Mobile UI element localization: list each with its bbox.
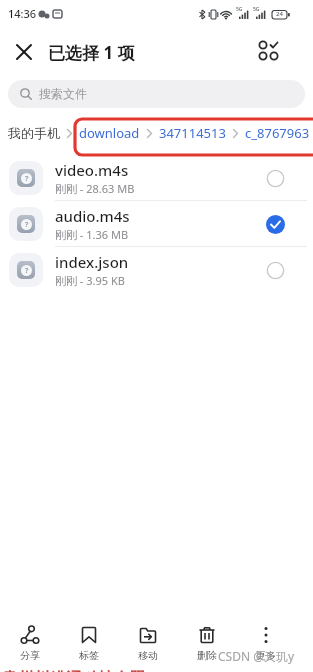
staticText: 搜索文件 (39, 86, 87, 101)
staticText: 移动 (138, 649, 158, 662)
button[interactable]: 更多 (236, 624, 295, 662)
staticText: video.m4s (55, 160, 129, 180)
staticText: 贵州川绯通科技有限! (2, 667, 151, 672)
button[interactable]: ? (0, 247, 313, 293)
button[interactable] (12, 40, 36, 64)
staticText: 14:36 (8, 6, 37, 21)
button[interactable]: ? (0, 155, 313, 201)
button[interactable]: ? (0, 201, 313, 247)
button[interactable] (254, 38, 282, 66)
staticText: ? (25, 220, 29, 230)
staticText: ? (25, 266, 29, 276)
staticText: audio.m4s (55, 206, 130, 226)
staticText: 刚刚 - 1.36 MB (55, 227, 129, 242)
staticText: 删除 (197, 649, 217, 662)
staticText: 已选择 1 项 (48, 41, 135, 64)
button[interactable]: 删除 (177, 624, 236, 662)
button[interactable]: 移动 (118, 624, 177, 662)
button[interactable]: 标签 (59, 624, 118, 662)
staticText: 5G (253, 6, 260, 13)
staticText: 更多 (256, 649, 276, 662)
button[interactable]: 347114513 (159, 124, 226, 142)
staticText: ? (25, 174, 29, 184)
button[interactable]: c_8767963 (245, 124, 310, 142)
staticText: 刚刚 - 28.63 MB (55, 181, 135, 196)
staticText: 24 (276, 10, 283, 18)
staticText: CSDN @天玑y (218, 648, 295, 664)
button[interactable]: 分享 (0, 624, 59, 662)
button[interactable]: 搜索文件 (8, 80, 305, 108)
staticText: 刚刚 - 3.95 KB (55, 273, 125, 288)
staticText: 我的手机 (8, 125, 60, 141)
button[interactable]: download (79, 124, 140, 142)
staticText: 分享 (20, 649, 40, 662)
staticText: index.json (55, 252, 129, 272)
staticText: 5G (236, 6, 243, 13)
staticText: 标签 (79, 649, 99, 662)
